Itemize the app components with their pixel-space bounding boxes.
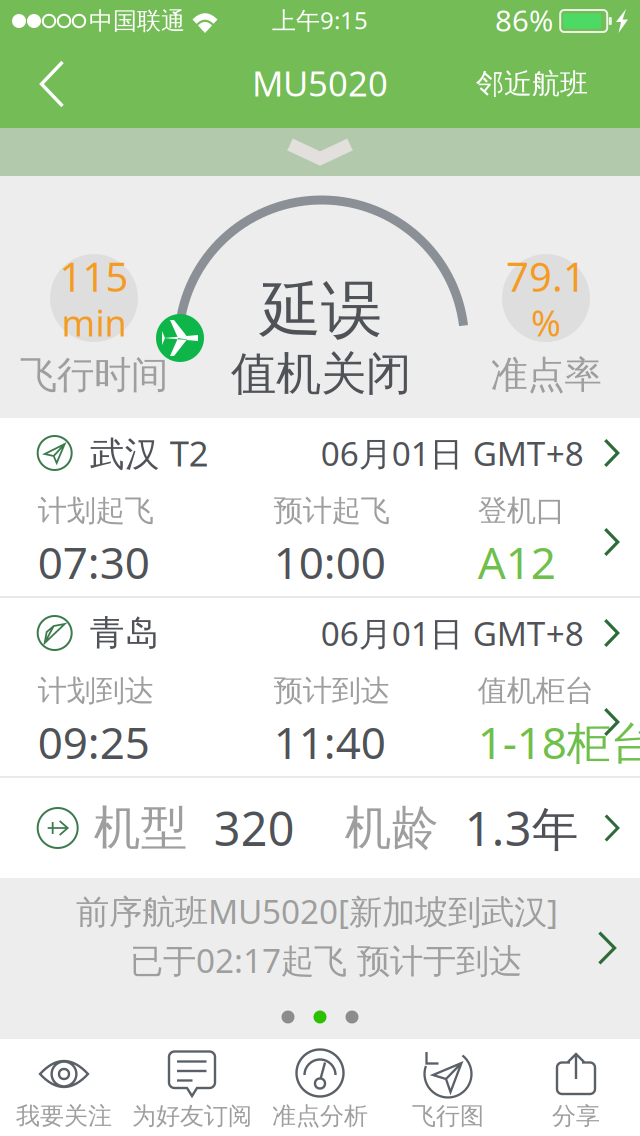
staticText: 机龄 [345,799,439,857]
button[interactable]: 我要关注 [0,1039,128,1136]
staticText: 中国联通 [89,6,185,36]
staticText: % [531,299,561,346]
staticText: 计划到达 [38,673,154,709]
staticText: 320 [214,797,295,859]
button[interactable]: 青岛 [0,598,640,668]
button[interactable]: 飞行图 [384,1039,512,1136]
staticText: 已于02:17起飞 预计于到达 [130,938,522,982]
button[interactable]: 武汉 T2 [0,418,640,488]
staticText: 1.3年 [465,797,579,859]
staticText: 机型 [94,799,188,857]
staticText: 06月01日 GMT+8 [321,431,584,475]
staticText: 86% [495,0,553,39]
staticText: 延误 [260,272,382,348]
staticText: 武汉 T2 [90,430,209,476]
staticText: 06月01日 GMT+8 [321,611,584,655]
staticText: 准点率 [490,352,601,398]
staticText: 值机关闭 [231,346,411,402]
button[interactable]: 机型 [0,778,640,878]
staticText: 上午9:15 [272,4,368,36]
button[interactable]: 为好友订阅 [128,1039,256,1136]
button[interactable]: 前序航班MU5020[新加坡到武汉] [0,878,640,1000]
staticText: 计划起飞 [38,493,154,529]
staticText: 09:25 [38,713,150,771]
button[interactable]: 准点分析 [256,1039,384,1136]
staticText: 1-18柜台 [478,713,640,771]
staticText: min [61,299,126,346]
staticText: A12 [478,533,556,591]
button[interactable]: 计划到达 [0,668,640,776]
staticText: 我要关注 [16,1101,112,1131]
staticText: 青岛 [90,612,160,654]
staticText: 预计起飞 [274,493,390,529]
staticText: 飞行图 [412,1101,484,1131]
staticText: 10:00 [274,533,386,591]
staticText: 11:40 [274,713,386,771]
staticText: 前序航班MU5020[新加坡到武汉] [76,889,558,933]
staticText: 79.1 [506,250,586,303]
staticText: 115 [59,250,128,303]
button[interactable]: 分享 [512,1039,640,1136]
staticText: 准点分析 [272,1101,368,1131]
staticText: 邻近航班 [476,67,588,101]
staticText: 为好友订阅 [132,1101,252,1131]
button[interactable]: 邻近航班 [458,40,606,128]
staticText: 预计到达 [274,673,390,709]
staticText: 值机柜台 [478,673,594,709]
staticText: 登机口 [478,493,565,529]
staticText: MU5020 [252,60,388,106]
staticText: 07:30 [38,533,150,591]
button[interactable]: 计划起飞 [0,488,640,596]
staticText: 飞行时间 [20,352,168,398]
staticText: 分享 [552,1101,600,1131]
button[interactable]: Back [7,40,97,128]
